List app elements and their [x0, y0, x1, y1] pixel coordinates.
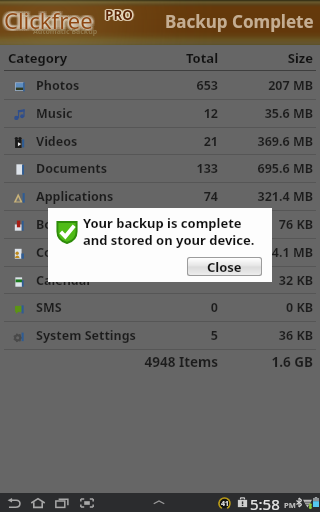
- staticText: PRO: [105, 5, 133, 23]
- staticText: Clickfree: [3, 3, 92, 33]
- staticText: Clickfree: [1, 7, 90, 37]
- staticText: PRO: [106, 6, 134, 24]
- staticText: PRO: [105, 7, 133, 25]
- staticText: Clickfree: [2, 6, 91, 36]
- button[interactable]: Home: [29, 495, 47, 510]
- button[interactable]: SMS: [0, 293, 320, 321]
- staticText: PRO: [106, 7, 134, 25]
- button[interactable]: Contacts: [0, 238, 320, 266]
- staticText: PRO: [104, 7, 132, 25]
- staticText: Clickfree: [3, 5, 92, 35]
- staticText: PM: [284, 500, 296, 510]
- staticText: PRO: [105, 6, 133, 24]
- staticText: 74: [138, 188, 218, 205]
- staticText: 653: [138, 77, 218, 94]
- staticText: PRO: [104, 6, 132, 24]
- staticText: Clickfree: [6, 6, 95, 36]
- staticText: Clickfree: [4, 4, 93, 34]
- staticText: 5: [138, 327, 218, 344]
- staticText: Clickfree: [4, 6, 93, 36]
- staticText: PRO: [105, 6, 133, 24]
- staticText: [138, 272, 218, 289]
- staticText: Automatic Backup: [33, 27, 98, 37]
- staticText: Total: [138, 49, 218, 67]
- staticText: PRO: [104, 6, 132, 24]
- staticText: PRO: [106, 5, 134, 23]
- button[interactable]: Recent apps: [53, 495, 71, 510]
- button[interactable]: Applications: [0, 182, 320, 210]
- staticText: 5:58: [250, 494, 280, 512]
- staticText: Applications: [36, 188, 114, 205]
- staticText: Clickfree: [5, 7, 94, 37]
- staticText: Clickfree: [5, 5, 94, 35]
- staticText: Calendar: [36, 272, 92, 289]
- staticText: PRO: [105, 5, 133, 23]
- staticText: Clickfree: [4, 4, 93, 34]
- staticText: 41: [221, 499, 230, 509]
- staticText: and stored on your device.: [83, 231, 255, 249]
- staticText: 36 KB: [223, 327, 313, 344]
- staticText: Clickfree: [2, 4, 91, 34]
- staticText: Category: [8, 49, 68, 67]
- staticText: Clickfree: [4, 5, 93, 35]
- button[interactable]: System Settings: [0, 321, 320, 349]
- staticText: 32 KB: [223, 272, 313, 289]
- staticText: 369.6 MB: [223, 133, 313, 150]
- staticText: 133: [138, 160, 218, 177]
- button[interactable]: Back: [5, 495, 23, 510]
- button[interactable]: Bookmarks: [0, 210, 320, 238]
- staticText: Clickfree: [1, 5, 90, 35]
- staticText: Clickfree: [3, 7, 92, 37]
- staticText: Clickfree: [1, 3, 90, 33]
- staticText: PRO: [105, 6, 133, 24]
- staticText: Clickfree: [7, 3, 96, 33]
- staticText: 35.6 MB: [223, 105, 313, 122]
- staticText: Clickfree: [4, 6, 93, 36]
- button[interactable]: Close: [188, 258, 261, 275]
- staticText: PRO: [107, 6, 135, 24]
- button[interactable]: Expand status bar: [148, 497, 170, 508]
- staticText: Documents: [36, 160, 108, 177]
- staticText: 4948 Items: [138, 353, 218, 371]
- staticText: 12: [138, 105, 218, 122]
- staticText: Clickfree: [3, 7, 92, 37]
- staticText: 1.6 GB: [223, 353, 313, 371]
- staticText: 21: [138, 133, 218, 150]
- staticText: Your backup is complete: [83, 214, 242, 232]
- staticText: PRO: [106, 6, 134, 24]
- staticText: PRO: [105, 7, 133, 25]
- staticText: [138, 216, 218, 233]
- staticText: Clickfree: [5, 5, 94, 35]
- button[interactable]: Videos: [0, 127, 320, 155]
- staticText: Close: [207, 258, 242, 275]
- staticText: Clickfree: [5, 3, 94, 33]
- button[interactable]: Music: [0, 99, 320, 127]
- staticText: PRO: [106, 6, 134, 24]
- staticText: PRO: [105, 7, 133, 25]
- staticText: 0: [138, 299, 218, 316]
- staticText: PRO: [105, 6, 133, 24]
- button[interactable]: Documents: [0, 154, 320, 182]
- staticText: PRO: [105, 6, 133, 24]
- staticText: Clickfree: [3, 5, 92, 35]
- staticText: Clickfree: [5, 3, 94, 33]
- button[interactable]: Screenshot: [78, 495, 96, 510]
- staticText: Clickfree: [7, 5, 96, 35]
- staticText: Photos: [36, 77, 80, 94]
- button[interactable]: Photos: [0, 71, 320, 99]
- staticText: [138, 244, 218, 261]
- staticText: PRO: [105, 6, 133, 24]
- staticText: PRO: [104, 6, 132, 24]
- staticText: Clickfree: [5, 7, 94, 37]
- staticText: PRO: [105, 6, 133, 24]
- button[interactable]: Calendar: [0, 266, 320, 294]
- staticText: 76 KB: [223, 216, 313, 233]
- staticText: 321.4 MB: [223, 188, 313, 205]
- staticText: PRO: [105, 5, 133, 23]
- staticText: Videos: [36, 133, 78, 150]
- staticText: 0 KB: [223, 299, 313, 316]
- staticText: Music: [36, 105, 73, 122]
- staticText: PRO: [105, 6, 133, 24]
- staticText: Clickfree: [6, 5, 95, 35]
- staticText: System Settings: [36, 327, 136, 344]
